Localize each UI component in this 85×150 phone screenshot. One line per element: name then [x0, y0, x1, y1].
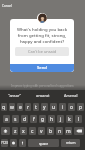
staticText: r [27, 104, 30, 111]
button[interactable]: Profile photo [37, 13, 47, 23]
staticText: x [22, 128, 25, 135]
staticText: y [43, 104, 46, 111]
staticText: o [70, 104, 74, 111]
staticText: q [2, 104, 6, 111]
staticText: e [19, 104, 22, 111]
staticText: "ansar" [8, 93, 22, 98]
button[interactable]: d [21, 115, 28, 123]
button[interactable]: i [59, 103, 66, 111]
staticText: space [39, 141, 49, 146]
button[interactable]: n [56, 127, 63, 135]
staticText: Arsenal [64, 93, 78, 98]
staticText: w [10, 104, 14, 111]
staticText: h [50, 116, 54, 123]
button[interactable]: a [3, 115, 10, 123]
button[interactable]: Can't be unsaid [15, 47, 69, 56]
button[interactable]: "ansar" [0, 90, 29, 101]
button[interactable]: Send [10, 64, 74, 72]
button[interactable]: j [57, 115, 64, 123]
staticText: f [33, 116, 35, 123]
button[interactable]: Voice input [19, 139, 26, 147]
staticText: v [40, 128, 43, 135]
button[interactable]: Arsenal [57, 90, 85, 101]
staticText: n [58, 128, 62, 135]
staticText: ansarat [36, 93, 50, 98]
button[interactable]: y [41, 103, 48, 111]
staticText: j [60, 116, 62, 123]
staticText: s [14, 116, 17, 123]
button[interactable]: q [1, 103, 7, 111]
button[interactable]: c [29, 127, 36, 135]
button[interactable]: ?123 [1, 139, 8, 147]
button[interactable]: Backspace [74, 127, 84, 135]
button[interactable]: m [65, 127, 72, 135]
button[interactable]: e [17, 103, 23, 111]
button[interactable]: v [38, 127, 45, 135]
button[interactable]: Emoji [10, 139, 17, 147]
staticText: a [5, 116, 8, 123]
button[interactable]: o [68, 103, 75, 111]
staticText: l [78, 116, 80, 123]
staticText: i [62, 104, 64, 111]
button[interactable]: return [61, 139, 80, 147]
button[interactable]: ansarat [29, 90, 57, 101]
staticText: return [66, 141, 76, 145]
staticText: z [14, 128, 17, 135]
button[interactable]: Shift [1, 127, 10, 135]
button[interactable]: u [50, 103, 57, 111]
staticText: c [31, 128, 34, 135]
staticText: Improve typing with personalised suggest… [11, 84, 74, 88]
staticText: Cancel [2, 4, 12, 8]
button[interactable]: f [30, 115, 37, 123]
staticText: ?123 [1, 141, 8, 145]
button[interactable]: r [25, 103, 31, 111]
staticText: Can't be unsaid [28, 49, 57, 54]
button[interactable]: g [39, 115, 46, 123]
button[interactable]: Cancel [1, 3, 13, 9]
staticText: m [66, 128, 71, 135]
button[interactable]: t [33, 103, 39, 111]
button[interactable]: s [12, 115, 19, 123]
staticText: p [79, 104, 83, 111]
staticText: u [52, 104, 56, 111]
staticText: b [49, 128, 53, 135]
button[interactable]: z [12, 127, 18, 135]
staticText: Send [37, 65, 47, 71]
staticText: t [35, 104, 37, 111]
button[interactable]: space [28, 139, 59, 147]
staticText: What's holding you back from getting fit… [15, 26, 69, 44]
staticText: d [23, 116, 27, 123]
staticText: g [41, 116, 45, 123]
button[interactable]: p [77, 103, 84, 111]
button[interactable]: h [48, 115, 55, 123]
button[interactable]: x [20, 127, 27, 135]
button[interactable]: l [75, 115, 82, 123]
button[interactable]: b [47, 127, 54, 135]
staticText: k [68, 116, 71, 123]
button[interactable]: k [66, 115, 73, 123]
button[interactable]: w [9, 103, 15, 111]
